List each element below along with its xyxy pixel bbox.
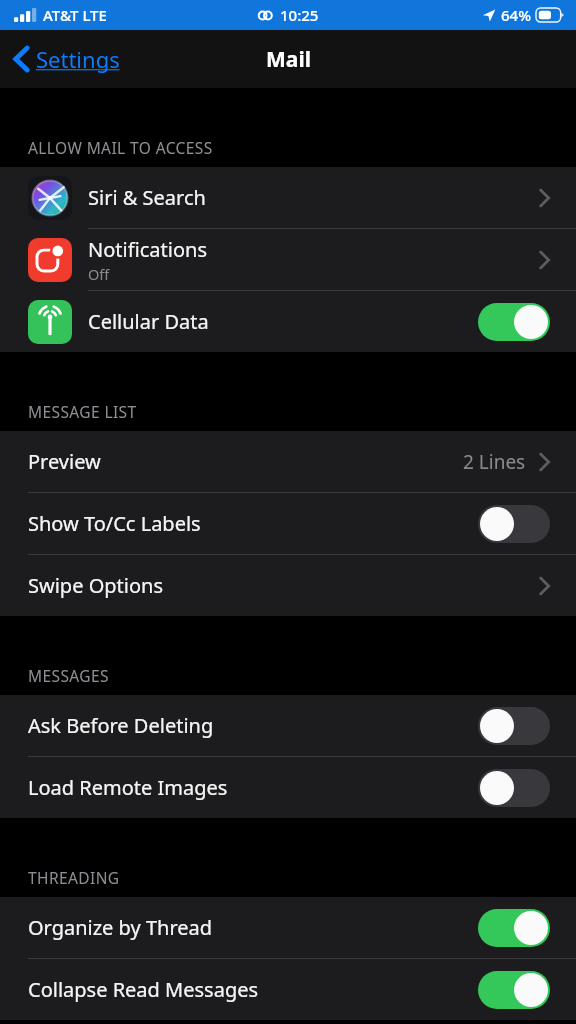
staticText: Load Remote Images: [28, 774, 228, 801]
staticText: Siri & Search: [88, 184, 206, 211]
staticText: MESSAGES: [28, 665, 109, 686]
staticText: Cellular Data: [88, 308, 209, 335]
staticText: Off: [88, 264, 110, 284]
staticText: 64%: [501, 5, 531, 25]
staticText: Collapse Read Messages: [28, 976, 259, 1003]
button[interactable]: Toggle off: [478, 769, 550, 807]
staticText: Settings: [36, 44, 120, 74]
button[interactable]: Notifications: [0, 229, 576, 290]
staticText: AT&T LTE: [43, 5, 107, 25]
button[interactable]: Show To/Cc Labels: [0, 493, 576, 554]
button[interactable]: Settings: [0, 36, 132, 82]
button[interactable]: Collapse Read Messages: [0, 959, 576, 1020]
staticText: Mail: [266, 45, 311, 74]
staticText: Notifications: [88, 236, 207, 263]
staticText: Organize by Thread: [28, 914, 213, 941]
button[interactable]: Toggle on: [478, 909, 550, 947]
button[interactable]: Siri & Search: [0, 167, 576, 228]
button[interactable]: Ask Before Deleting: [0, 695, 576, 756]
button[interactable]: Organize by Thread: [0, 897, 576, 958]
button[interactable]: Cellular Data: [0, 291, 576, 352]
button[interactable]: Toggle off: [478, 505, 550, 543]
staticText: Preview: [28, 448, 101, 475]
staticText: ALLOW MAIL TO ACCESS: [28, 137, 213, 158]
button[interactable]: Toggle on: [478, 971, 550, 1009]
staticText: Swipe Options: [28, 572, 163, 599]
button[interactable]: Swipe Options: [0, 555, 576, 616]
staticText: Ask Before Deleting: [28, 712, 214, 739]
button[interactable]: Load Remote Images: [0, 757, 576, 818]
staticText: THREADING: [28, 867, 120, 888]
staticText: Show To/Cc Labels: [28, 510, 201, 537]
button[interactable]: Toggle off: [478, 707, 550, 745]
staticText: 2 Lines: [463, 449, 526, 475]
staticText: MESSAGE LIST: [28, 401, 137, 422]
button[interactable]: Preview: [0, 431, 576, 492]
staticText: 10:25: [280, 5, 319, 25]
button[interactable]: Toggle on: [478, 303, 550, 341]
